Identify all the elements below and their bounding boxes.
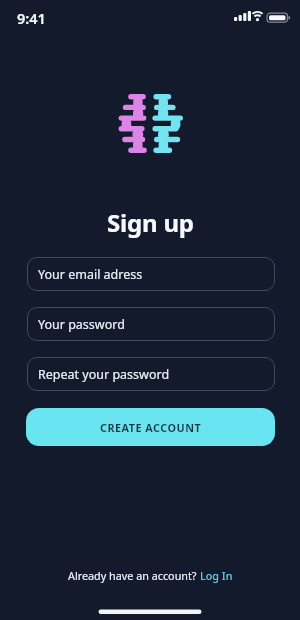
button[interactable]: Log In [200,568,233,583]
button[interactable]: CREATE ACCOUNT [26,408,275,446]
button[interactable]: Repeat your password [27,357,275,391]
staticText: 9:41 [17,8,46,28]
staticText: Your email adress [38,266,143,283]
staticText: Your password [38,316,125,333]
staticText: Log In [200,568,233,583]
staticText: CREATE ACCOUNT [100,420,202,435]
button[interactable]: Your email adress [27,257,275,291]
button[interactable]: Your password [27,307,275,341]
staticText: Sign up [107,206,194,239]
staticText: Repeat your password [38,366,170,383]
staticText: Already have an account? [68,568,200,583]
